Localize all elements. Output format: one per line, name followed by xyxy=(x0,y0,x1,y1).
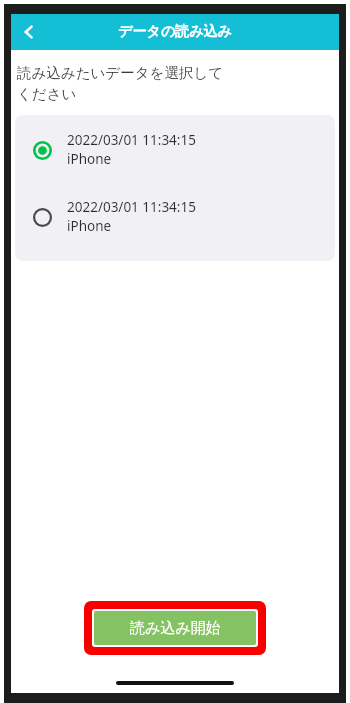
button[interactable]: 読み込み開始 xyxy=(94,611,256,645)
button[interactable]: 2022/03/01 11:34:15 xyxy=(15,125,335,174)
staticText: 2022/03/01 11:34:15 xyxy=(67,131,196,149)
staticText: データの読み込み xyxy=(118,23,232,41)
button[interactable]: 2022/03/01 11:34:15 xyxy=(15,192,335,241)
staticText: ください xyxy=(17,85,77,103)
staticText: iPhone xyxy=(67,150,112,168)
button[interactable]: Back xyxy=(11,14,47,50)
staticText: 読み込み開始 xyxy=(130,619,221,638)
staticText: 読み込みたいデータを選択して xyxy=(17,64,224,82)
staticText: 2022/03/01 11:34:15 xyxy=(67,198,196,216)
staticText: iPhone xyxy=(67,217,112,235)
